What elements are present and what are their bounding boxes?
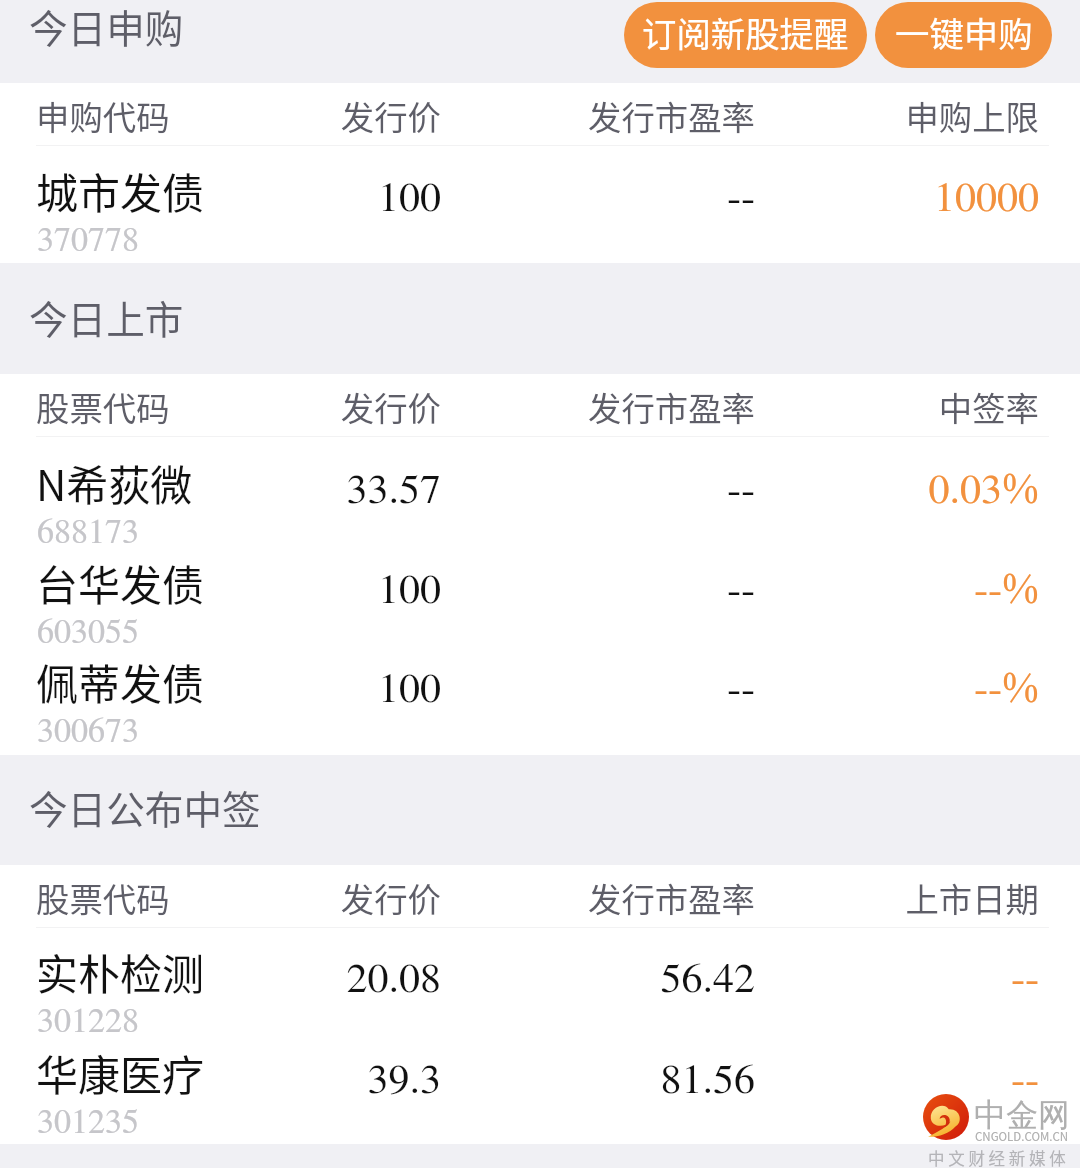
staticText: 301228 — [37, 1005, 139, 1039]
staticText: CNGOLD.COM.CN — [975, 1128, 1069, 1145]
staticText: 今日公布中签 — [29, 779, 261, 835]
staticText: 订阅新股提醒 — [642, 7, 849, 57]
staticText: 中金网 — [974, 1095, 1070, 1135]
staticText: --% — [974, 658, 1039, 716]
staticText: 佩蒂发债 — [36, 651, 205, 712]
button[interactable]: N希荻微 — [0, 436, 1080, 535]
staticText: 华康医疗 — [36, 1042, 205, 1103]
staticText: 今日申购 — [29, 0, 184, 54]
staticText: 城市发债 — [36, 160, 205, 221]
staticText: -- — [727, 469, 755, 511]
staticText: N希荻微 — [36, 452, 193, 513]
staticText: -- — [727, 569, 755, 611]
staticText: 10000 — [933, 177, 1039, 219]
staticText: 100 — [377, 569, 441, 611]
staticText: 上市日期 — [905, 873, 1039, 921]
staticText: 今日上市 — [29, 289, 184, 345]
staticText: -- — [727, 177, 755, 219]
staticText: 56.42 — [660, 958, 755, 1000]
button[interactable]: 城市发债 — [0, 146, 1080, 263]
staticText: 0.03% — [928, 459, 1039, 517]
staticText: 中 文 财 经 新 媒 体 — [928, 1146, 1066, 1168]
staticText: 33.57 — [346, 469, 441, 511]
staticText: 发行价 — [340, 382, 441, 430]
staticText: 发行市盈率 — [588, 873, 755, 921]
staticText: 发行市盈率 — [588, 91, 755, 139]
staticText: 股票代码 — [36, 873, 170, 921]
staticText: 100 — [377, 668, 441, 710]
staticText: 台华发债 — [36, 552, 205, 613]
staticText: 实朴检测 — [36, 941, 205, 1002]
staticText: -- — [727, 668, 755, 710]
staticText: 发行价 — [340, 91, 441, 139]
staticText: 中签率 — [938, 382, 1039, 430]
staticText: --% — [974, 559, 1039, 617]
staticText: 370778 — [37, 224, 139, 258]
staticText: 20.08 — [346, 958, 441, 1000]
button[interactable]: 佩蒂发债 — [0, 634, 1080, 755]
button[interactable]: 实朴检测 — [0, 927, 1080, 1026]
staticText: 申购代码 — [36, 91, 170, 139]
staticText: 发行市盈率 — [588, 382, 755, 430]
staticText: 81.56 — [660, 1059, 755, 1101]
staticText: 300673 — [37, 715, 139, 749]
staticText: 603055 — [37, 616, 139, 650]
button[interactable]: 台华发债 — [0, 535, 1080, 634]
staticText: 发行价 — [340, 873, 441, 921]
staticText: 一键申购 — [895, 7, 1033, 57]
staticText: 39.3 — [367, 1059, 441, 1101]
staticText: 688173 — [37, 516, 139, 550]
staticText: -- — [1011, 958, 1039, 1000]
button[interactable]: 订阅新股提醒 — [624, 2, 867, 68]
button[interactable]: 一键申购 — [875, 2, 1052, 68]
staticText: 100 — [377, 177, 441, 219]
button[interactable]: 华康医疗 — [0, 1026, 1080, 1147]
staticText: 301235 — [37, 1106, 139, 1140]
staticText: 股票代码 — [36, 382, 170, 430]
staticText: 申购上限 — [905, 91, 1039, 139]
staticText: -- — [1011, 1059, 1039, 1101]
